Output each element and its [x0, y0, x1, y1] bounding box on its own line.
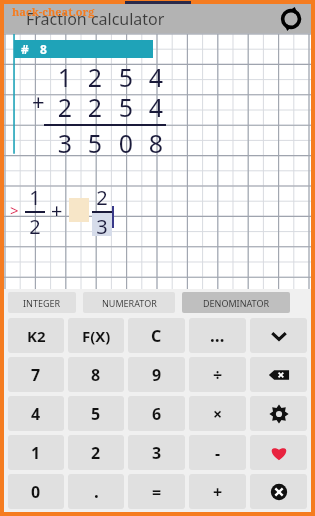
staticText: 3 [50, 126, 80, 160]
staticText: 9 [152, 364, 162, 386]
staticText: 5 [80, 126, 110, 160]
button[interactable]: . [68, 474, 124, 509]
staticText: . [94, 480, 99, 503]
staticText: K2 [27, 326, 46, 346]
button[interactable]: NUMERATOR [83, 292, 175, 313]
staticText: 8 [40, 41, 47, 57]
staticText: hack-cheat.org [12, 4, 95, 19]
staticText: Fraction calculator [26, 8, 165, 30]
button[interactable]: … [189, 318, 246, 353]
staticText: > [10, 200, 19, 220]
staticText: C [151, 325, 162, 347]
button[interactable]: 1 [8, 435, 64, 470]
staticText: 5 [111, 90, 141, 124]
button[interactable]: 5 [68, 396, 124, 431]
button[interactable]: Backspace [250, 357, 307, 392]
staticText: + [32, 86, 45, 116]
button[interactable]: F(X) [68, 318, 124, 353]
button[interactable]: INTEGER [8, 292, 76, 313]
staticText: 4 [141, 90, 171, 124]
button[interactable]: + [189, 474, 246, 509]
button[interactable]: 7 [8, 357, 64, 392]
staticText: F(X) [82, 326, 111, 346]
button[interactable]: 6 [128, 396, 185, 431]
staticText: 2 [91, 442, 101, 464]
button[interactable]: 2 [25, 213, 45, 236]
staticText: 8 [91, 364, 101, 386]
staticText: 1 [50, 60, 80, 94]
button[interactable]: 8 [68, 357, 124, 392]
staticText: ÷ [213, 364, 223, 386]
staticText: 0 [31, 481, 41, 503]
staticText: = [152, 481, 162, 503]
staticText: 5 [91, 403, 101, 425]
staticText: 3 [92, 213, 112, 236]
button[interactable]: 3 [92, 213, 112, 236]
button[interactable]: K2 [8, 318, 64, 353]
staticText: 0 [111, 126, 141, 160]
staticText: 4 [31, 403, 41, 425]
button[interactable]: 9 [128, 357, 185, 392]
button[interactable]: Clear all [250, 474, 307, 509]
staticText: … [210, 324, 225, 347]
button[interactable]: Hide keyboard [250, 318, 307, 353]
staticText: 2 [80, 90, 110, 124]
staticText: 2 [25, 213, 45, 236]
staticText: 8 [141, 126, 171, 160]
staticText: 6 [152, 403, 162, 425]
button[interactable]: DENOMINATOR [182, 292, 290, 313]
staticText: 2 [80, 60, 110, 94]
button[interactable]: - [189, 435, 246, 470]
button[interactable]: Settings [250, 396, 307, 431]
staticText: 4 [141, 60, 171, 94]
staticText: 1 [31, 442, 41, 464]
button[interactable]: 3 [128, 435, 185, 470]
staticText: 3 [152, 442, 162, 464]
staticText: + [51, 197, 63, 224]
staticText: DENOMINATOR [203, 297, 270, 309]
staticText: + [213, 481, 223, 503]
button[interactable]: 4 [8, 396, 64, 431]
staticText: 5 [111, 60, 141, 94]
button[interactable]: Favorite [250, 435, 307, 470]
button[interactable]: 0 [8, 474, 64, 509]
staticText: × [213, 403, 223, 425]
staticText: 2 [93, 184, 111, 211]
button[interactable]: = [128, 474, 185, 509]
staticText: 1 [26, 184, 44, 211]
staticText: 2 [50, 90, 80, 124]
staticText: # [21, 41, 29, 57]
staticText: 7 [31, 364, 41, 386]
staticText: NUMERATOR [102, 297, 157, 309]
staticText: - [215, 442, 221, 464]
button[interactable]: C [128, 318, 185, 353]
staticText: INTEGER [23, 297, 61, 309]
button[interactable]: 2 [68, 435, 124, 470]
button[interactable]: Refresh [277, 5, 305, 33]
button[interactable]: ÷ [189, 357, 246, 392]
button[interactable]: × [189, 396, 246, 431]
